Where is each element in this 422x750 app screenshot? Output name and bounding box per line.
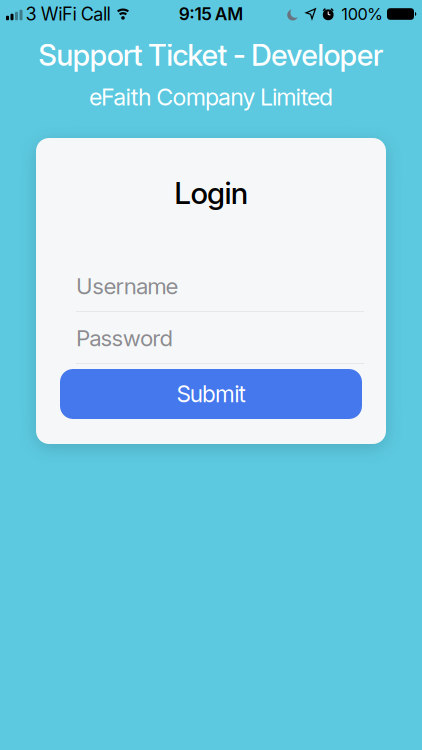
staticText: Login (174, 175, 248, 211)
staticText: Username (76, 272, 178, 299)
button[interactable]: Username (36, 274, 386, 298)
button[interactable]: Submit (60, 369, 362, 419)
staticText: 100% (341, 4, 383, 24)
staticText: 3 WiFi Call (25, 3, 110, 25)
staticText: Submit (176, 380, 245, 408)
staticText: Support Ticket - Developer (38, 37, 384, 73)
staticText: Password (76, 324, 173, 351)
staticText: eFaith Company Limited (89, 83, 333, 111)
staticText: 9:15 AM (179, 3, 243, 24)
button[interactable]: Password (36, 326, 386, 350)
